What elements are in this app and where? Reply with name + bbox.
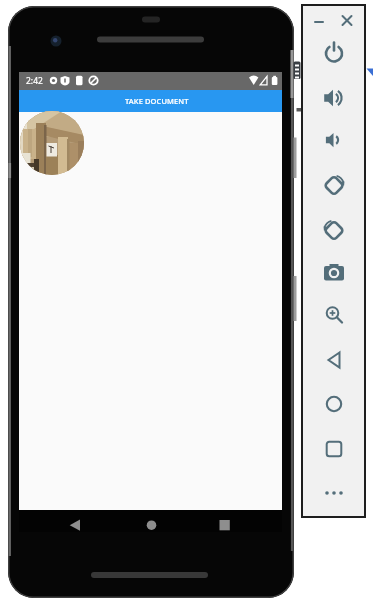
button[interactable]: [210, 510, 239, 532]
button[interactable]: [337, 10, 357, 30]
button[interactable]: [320, 126, 348, 154]
button[interactable]: [320, 479, 348, 507]
button[interactable]: [309, 10, 329, 30]
button[interactable]: [320, 346, 348, 374]
button[interactable]: [320, 216, 348, 244]
staticText: TAKE DOCUMENT: [125, 96, 189, 106]
button[interactable]: [137, 510, 166, 532]
button[interactable]: [320, 171, 348, 199]
button[interactable]: [20, 111, 84, 175]
button[interactable]: [320, 301, 348, 329]
button[interactable]: [320, 390, 348, 418]
button[interactable]: [320, 38, 348, 66]
button[interactable]: [60, 510, 89, 532]
button[interactable]: [320, 84, 348, 112]
button[interactable]: [320, 258, 348, 286]
staticText: 2:42: [26, 75, 43, 87]
button[interactable]: [320, 435, 348, 463]
